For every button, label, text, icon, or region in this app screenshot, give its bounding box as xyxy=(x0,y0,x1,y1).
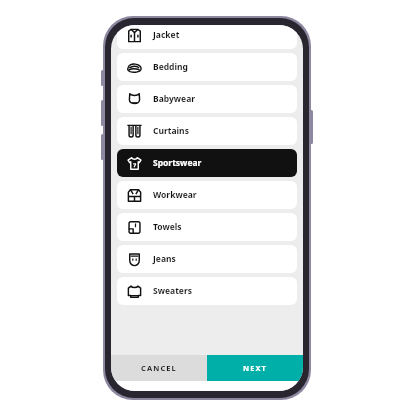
button[interactable]: Sportswear xyxy=(117,149,297,177)
button[interactable]: NEXT xyxy=(207,355,303,381)
staticText: Sweaters xyxy=(153,285,192,297)
staticText: Towels xyxy=(153,221,182,233)
button[interactable]: Sweaters xyxy=(117,277,297,305)
staticText: Jeans xyxy=(153,253,176,265)
staticText: Curtains xyxy=(153,125,189,137)
button[interactable]: Jeans xyxy=(117,245,297,273)
button[interactable]: Workwear xyxy=(117,181,297,209)
staticText: Bedding xyxy=(153,61,188,73)
button[interactable]: Bedding xyxy=(117,53,297,81)
staticText: Jacket xyxy=(153,29,180,41)
staticText: Babywear xyxy=(153,93,196,105)
staticText: Sportswear xyxy=(153,157,202,169)
button[interactable]: Babywear xyxy=(117,85,297,113)
button[interactable]: CANCEL xyxy=(111,355,207,381)
staticText: NEXT xyxy=(243,363,268,373)
button[interactable]: Jacket xyxy=(117,25,297,49)
staticText: CANCEL xyxy=(141,363,177,373)
staticText: Workwear xyxy=(153,189,197,201)
button[interactable]: Curtains xyxy=(117,117,297,145)
button[interactable]: Towels xyxy=(117,213,297,241)
